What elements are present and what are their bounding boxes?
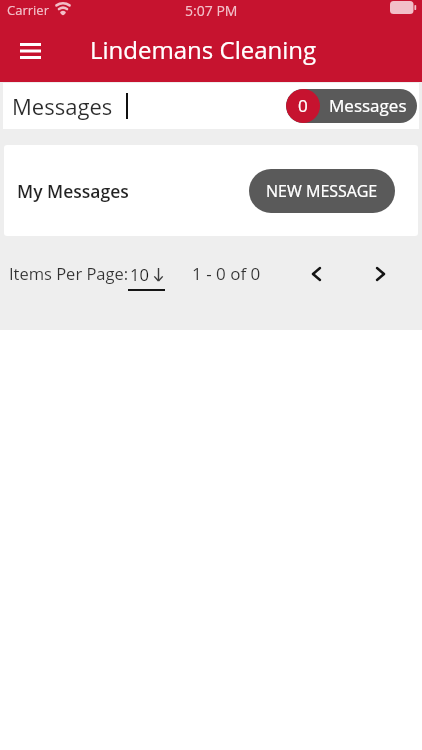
button[interactable]: NEW MESSAGE (249, 169, 395, 213)
button[interactable]: Previous page (297, 255, 335, 293)
staticText: My Messages (17, 179, 129, 203)
staticText: NEW MESSAGE (266, 180, 378, 202)
button[interactable]: Open navigation menu (9, 31, 51, 73)
staticText: Carrier (7, 1, 49, 19)
staticText: 1 - 0 of 0 (192, 262, 261, 285)
button[interactable]: 0 (286, 89, 417, 123)
button[interactable]: Next page (361, 255, 399, 293)
staticText: Messages (12, 91, 113, 121)
staticText: Items Per Page: (9, 262, 129, 284)
staticText: 0 (298, 94, 308, 117)
staticText: 5:07 PM (185, 1, 238, 20)
staticText: Lindemans Cleaning (90, 33, 317, 66)
staticText: 10 (130, 263, 149, 285)
staticText: Messages (329, 94, 407, 117)
button[interactable]: 10 (130, 251, 168, 295)
